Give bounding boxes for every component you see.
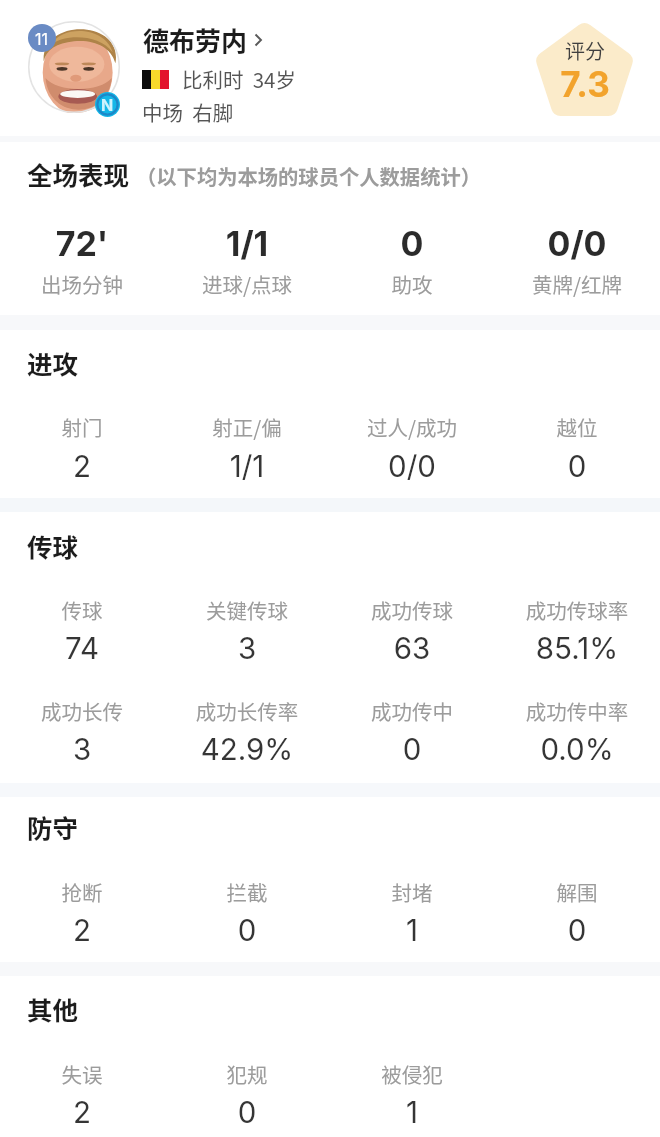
staticText: 85.1% xyxy=(495,630,659,666)
button[interactable]: 抢断 xyxy=(0,869,164,943)
staticText: 成功长传率 xyxy=(165,696,329,726)
button[interactable]: 成功传球 xyxy=(330,587,494,661)
staticText: 1/1 xyxy=(165,448,329,484)
staticText: 传球 xyxy=(0,595,164,625)
staticText: 成功传中 xyxy=(330,696,494,726)
staticText: 0/0 xyxy=(495,223,659,264)
staticText: 失误 xyxy=(0,1059,164,1089)
staticText: 72' xyxy=(0,223,164,264)
staticText: 全场表现 xyxy=(27,155,130,192)
staticText: 2 xyxy=(0,912,164,948)
button[interactable]: 0/0 xyxy=(495,218,659,300)
staticText: 进球/点球 xyxy=(165,269,329,299)
staticText: 射正/偏 xyxy=(165,412,329,442)
staticText: 被侵犯 xyxy=(330,1059,494,1089)
staticText: 成功传球率 xyxy=(495,595,659,625)
staticText: 2 xyxy=(0,1094,164,1130)
staticText: 过人/成功 xyxy=(330,412,494,442)
staticText: 其他 xyxy=(27,990,79,1027)
staticText: 0 xyxy=(495,448,659,484)
staticText: 成功长传 xyxy=(0,696,164,726)
button[interactable]: 德布劳内 xyxy=(143,21,263,59)
button[interactable]: 封堵 xyxy=(330,869,494,943)
button[interactable]: Rating 7.3 xyxy=(532,21,637,126)
button[interactable]: 0 xyxy=(330,218,494,300)
staticText: 德布劳内 xyxy=(143,21,248,59)
staticText: 63 xyxy=(330,630,494,666)
staticText: 0.0% xyxy=(495,731,659,767)
button[interactable]: 成功传球率 xyxy=(495,587,659,661)
button[interactable]: 射门 xyxy=(0,404,164,479)
staticText: 评分 xyxy=(425,36,660,65)
button[interactable]: 成功传中 xyxy=(330,688,494,762)
staticText: 拦截 xyxy=(165,877,329,907)
staticText: 进攻 xyxy=(27,344,79,381)
staticText: 封堵 xyxy=(330,877,494,907)
staticText: 0 xyxy=(330,223,494,264)
staticText: 成功传中率 xyxy=(495,696,659,726)
staticText: 0 xyxy=(165,912,329,948)
staticText: 3 xyxy=(0,731,164,767)
button[interactable]: 越位 xyxy=(495,404,659,479)
staticText: 42.9% xyxy=(165,731,329,767)
staticText: 1 xyxy=(330,912,494,948)
button[interactable]: 关键传球 xyxy=(165,587,329,661)
staticText: 74 xyxy=(0,630,164,666)
staticText: 越位 xyxy=(495,412,659,442)
button[interactable]: 被侵犯 xyxy=(330,1051,494,1125)
staticText: 成功传球 xyxy=(330,595,494,625)
staticText: 3 xyxy=(165,630,329,666)
staticText: 抢断 xyxy=(0,877,164,907)
button[interactable]: 失误 xyxy=(0,1051,164,1125)
button[interactable]: 拦截 xyxy=(165,869,329,943)
staticText: 黄牌/红牌 xyxy=(495,269,659,299)
staticText: 7.3 xyxy=(425,63,660,105)
button[interactable]: 解围 xyxy=(495,869,659,943)
button[interactable]: 射正/偏 xyxy=(165,404,329,479)
staticText: N xyxy=(101,95,114,114)
staticText: 传球 xyxy=(27,527,79,564)
staticText: 2 xyxy=(0,448,164,484)
staticText: 0 xyxy=(165,1094,329,1130)
button[interactable]: 犯规 xyxy=(165,1051,329,1125)
staticText: 防守 xyxy=(27,808,79,845)
staticText: 比利时 34岁 xyxy=(182,64,296,94)
button[interactable]: 传球 xyxy=(0,587,164,661)
staticText: 中场 右脚 xyxy=(142,97,234,127)
button[interactable]: Player photo xyxy=(28,21,120,113)
staticText: 关键传球 xyxy=(165,595,329,625)
staticText: 射门 xyxy=(0,412,164,442)
staticText: 1/1 xyxy=(165,223,329,264)
staticText: （以下均为本场的球员个人数据统计） xyxy=(136,161,482,190)
staticText: 解围 xyxy=(495,877,659,907)
button[interactable]: 72' xyxy=(0,218,164,300)
button[interactable]: 1/1 xyxy=(165,218,329,300)
staticText: 助攻 xyxy=(330,269,494,299)
staticText: 0 xyxy=(495,912,659,948)
button[interactable]: 成功传中率 xyxy=(495,688,659,762)
button[interactable]: 过人/成功 xyxy=(330,404,494,479)
staticText: 11 xyxy=(35,29,49,48)
staticText: 0 xyxy=(330,731,494,767)
button[interactable]: 成功长传 xyxy=(0,688,164,762)
staticText: 出场分钟 xyxy=(0,269,164,299)
staticText: 0/0 xyxy=(330,448,494,484)
staticText: 1 xyxy=(330,1094,494,1130)
button[interactable]: 成功长传率 xyxy=(165,688,329,762)
staticText: 犯规 xyxy=(165,1059,329,1089)
